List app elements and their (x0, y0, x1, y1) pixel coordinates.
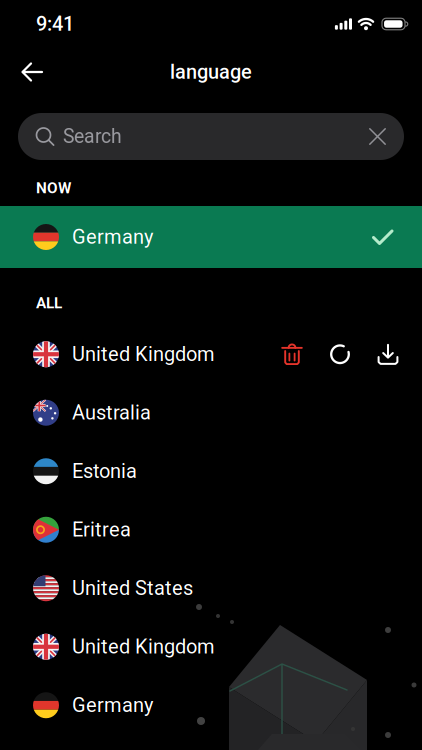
staticText: Estonia (72, 459, 137, 483)
button[interactable]: Australia (0, 383, 422, 442)
button[interactable]: Back (0, 54, 43, 90)
staticText: Eritrea (72, 518, 131, 541)
staticText: United States (72, 576, 193, 600)
staticText: NOW (36, 179, 71, 197)
button[interactable]: Germany (0, 676, 422, 734)
staticText: 9:41 (36, 12, 74, 36)
staticText: Search (63, 125, 122, 148)
staticText: Australia (72, 401, 151, 424)
button[interactable]: Eritrea (0, 500, 422, 559)
button[interactable]: Reload (327, 341, 353, 367)
staticText: ALL (36, 294, 62, 312)
button[interactable]: United States (0, 559, 422, 617)
button[interactable]: Germany (0, 206, 422, 268)
staticText: Germany (72, 225, 153, 249)
button[interactable]: Clear search (369, 128, 404, 145)
staticText: United Kingdom (72, 342, 215, 366)
button[interactable]: Delete (279, 341, 305, 367)
button[interactable]: Search (18, 113, 404, 160)
button[interactable]: Download (375, 341, 401, 367)
button[interactable]: United Kingdom (0, 325, 422, 383)
staticText: United Kingdom (72, 635, 215, 658)
staticText: Germany (72, 693, 153, 717)
staticText: language (170, 60, 252, 84)
button[interactable]: United Kingdom (0, 617, 422, 676)
button[interactable]: Estonia (0, 442, 422, 500)
